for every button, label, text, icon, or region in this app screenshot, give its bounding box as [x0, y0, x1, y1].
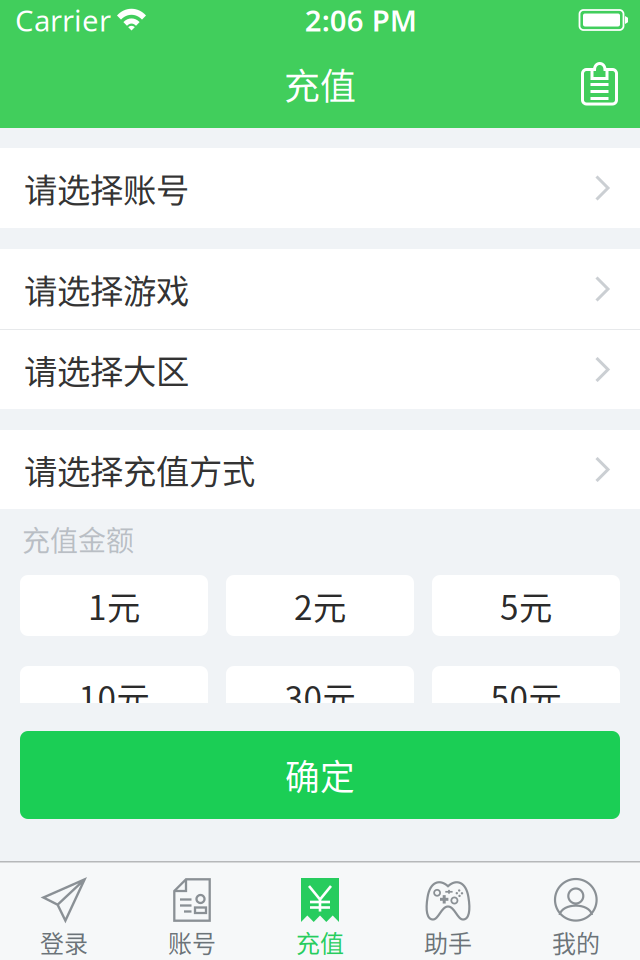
- staticText: 请选择账号: [24, 164, 189, 212]
- button[interactable]: Order records: [559, 40, 640, 128]
- button[interactable]: 请选择充值方式: [0, 430, 640, 509]
- staticText: 确定: [285, 750, 355, 800]
- button[interactable]: 请选择账号: [0, 148, 640, 228]
- staticText: 2:06 PM: [305, 0, 417, 39]
- staticText: 2元: [294, 581, 346, 630]
- button[interactable]: 我的: [512, 861, 640, 960]
- button[interactable]: 助手: [384, 861, 512, 960]
- staticText: 充值: [284, 58, 356, 110]
- button[interactable]: 请选择游戏: [0, 249, 640, 329]
- staticText: 充值: [296, 925, 344, 959]
- staticText: 1元: [88, 581, 140, 630]
- button[interactable]: 确定: [20, 731, 620, 819]
- staticText: 30元: [284, 672, 355, 721]
- button[interactable]: 1元: [20, 575, 208, 636]
- button[interactable]: 请选择大区: [0, 330, 640, 409]
- staticText: 助手: [424, 925, 472, 959]
- staticText: 50元: [490, 672, 561, 721]
- button[interactable]: 2元: [226, 575, 414, 636]
- staticText: 登录: [40, 925, 88, 959]
- staticText: 请选择大区: [24, 345, 189, 394]
- staticText: 我的: [552, 925, 600, 959]
- button[interactable]: 10元: [20, 666, 208, 727]
- button[interactable]: 充值: [256, 861, 384, 960]
- staticText: 10元: [78, 672, 149, 721]
- staticText: 5元: [500, 581, 552, 630]
- button[interactable]: 5元: [432, 575, 620, 636]
- button[interactable]: 登录: [0, 861, 128, 960]
- button[interactable]: 50元: [432, 666, 620, 727]
- staticText: 账号: [168, 925, 216, 959]
- staticText: 请选择游戏: [24, 265, 189, 313]
- staticText: 充值金额: [22, 519, 134, 559]
- staticText: 请选择充值方式: [24, 445, 255, 494]
- button[interactable]: 30元: [226, 666, 414, 727]
- staticText: Carrier: [15, 0, 111, 39]
- button[interactable]: 账号: [128, 861, 256, 960]
